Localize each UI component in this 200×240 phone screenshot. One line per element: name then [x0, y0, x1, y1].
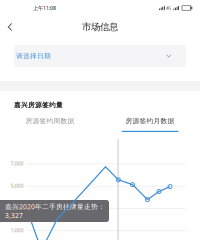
- staticText: 请选择日期: [16, 52, 51, 60]
- button[interactable]: 请选择日期: [14, 45, 186, 67]
- staticText: 7,000: [10, 160, 23, 167]
- staticText: 嘉兴房源签约量: [14, 101, 63, 109]
- button[interactable]: 房源签约周数据: [0, 116, 100, 134]
- staticText: 3,000: [10, 204, 23, 212]
- staticText: 嘉兴2020年二手房挂牌量走势：3,327: [5, 202, 105, 220]
- staticText: 市场信息: [82, 21, 118, 33]
- button[interactable]: 房源签约月数据: [100, 116, 200, 134]
- staticText: 房源签约周数据: [25, 117, 74, 125]
- staticText: 4G: [166, 5, 171, 11]
- staticText: 1,000: [10, 227, 23, 234]
- button[interactable]: Back: [0, 17, 20, 37]
- staticText: 5,000: [10, 182, 23, 189]
- staticText: 房源签约月数据: [125, 117, 174, 125]
- staticText: 上午11:08: [33, 4, 56, 12]
